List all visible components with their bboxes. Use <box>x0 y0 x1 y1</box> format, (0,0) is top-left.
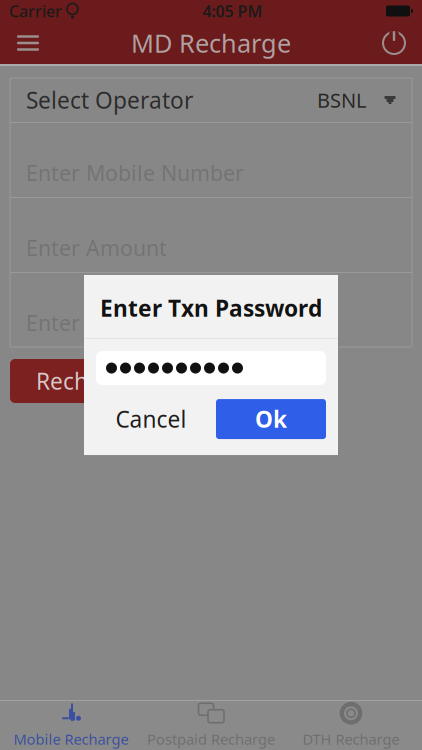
staticText: Postpaid Recharge <box>147 729 275 749</box>
staticText: Carrier <box>9 0 62 22</box>
staticText: Enter Mobile Number <box>26 159 244 187</box>
staticText: Select Operator <box>26 85 193 115</box>
staticText: Cancel <box>115 404 186 434</box>
staticText: Enter TXN Password <box>26 309 229 337</box>
staticText: Mobile Recharge <box>13 729 128 749</box>
button[interactable]: Menu <box>6 22 50 64</box>
button[interactable]: DTH Recharge <box>281 701 421 749</box>
staticText: Enter Amount <box>26 234 167 262</box>
staticText: Recharge <box>36 366 137 396</box>
button[interactable]: Select Operator <box>10 78 412 122</box>
staticText: 4:05 PM <box>202 0 262 22</box>
button[interactable]: Cancel <box>96 399 206 439</box>
button[interactable]: Postpaid Recharge <box>141 701 281 749</box>
button[interactable]: Enter Mobile Number <box>10 123 412 197</box>
staticText: BSNL <box>317 87 366 113</box>
button[interactable]: Enter TXN Password <box>10 273 412 347</box>
button[interactable]: Ok <box>216 399 326 439</box>
button[interactable]: Recharge <box>10 359 163 403</box>
button[interactable]: Mobile Recharge <box>1 701 141 749</box>
staticText: Ok <box>255 404 287 434</box>
staticText: MD Recharge <box>131 26 291 60</box>
staticText: DTH Recharge <box>302 729 399 749</box>
button[interactable]: Log out <box>372 22 416 64</box>
staticText: Enter Txn Password <box>100 293 322 323</box>
